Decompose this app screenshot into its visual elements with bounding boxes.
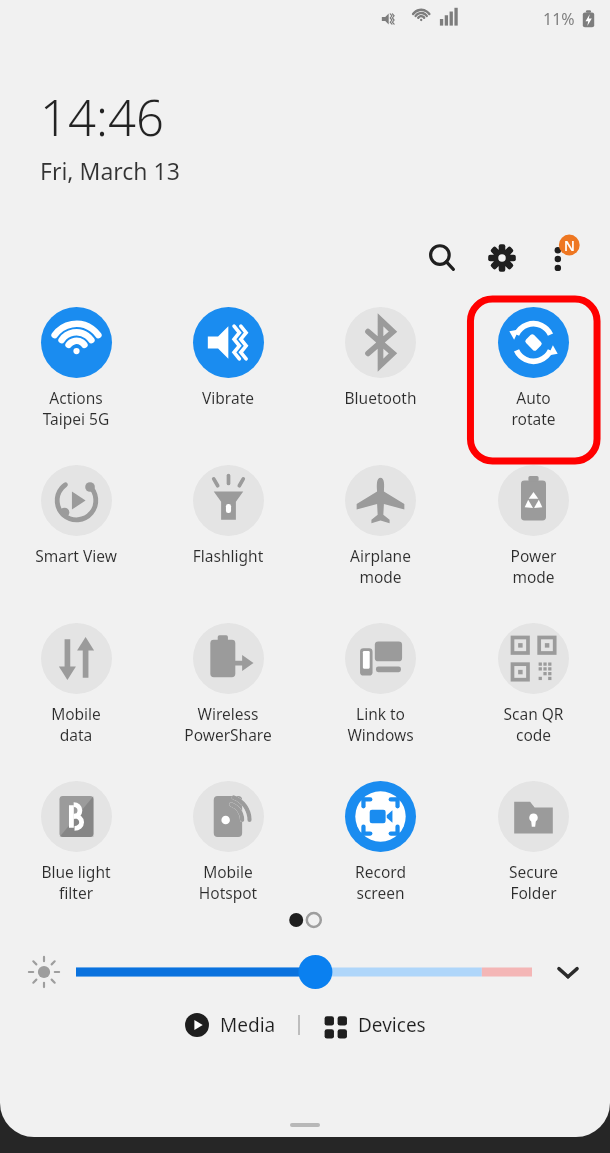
staticText: Link to Windows <box>304 703 457 746</box>
staticText: Record screen <box>304 861 457 904</box>
button[interactable]: Wireless PowerShare <box>152 623 304 746</box>
staticText: Blue light filter <box>0 861 152 904</box>
staticText: Mobile Hotspot <box>152 861 304 904</box>
staticText: Bluetooth <box>304 387 457 408</box>
button[interactable]: Bluetooth <box>304 307 457 408</box>
staticText: Scan QR code <box>457 703 610 746</box>
staticText: Wireless PowerShare <box>152 703 304 746</box>
staticText: N <box>564 236 575 255</box>
button[interactable]: Blue light filter <box>0 781 152 904</box>
button[interactable]: Auto rotate <box>457 307 610 430</box>
button[interactable]: Devices <box>314 1006 434 1044</box>
staticText: Devices <box>358 1012 426 1038</box>
staticText: Power mode <box>457 545 610 588</box>
staticText: Vibrate <box>152 387 304 408</box>
button[interactable]: Flashlight <box>152 465 304 566</box>
button[interactable]: Expand brightness options <box>548 952 588 992</box>
staticText: 14:46 <box>40 84 164 151</box>
button[interactable]: Vibrate <box>152 307 304 408</box>
staticText: Fri, March 13 <box>40 155 180 186</box>
button[interactable]: Smart View <box>0 465 152 566</box>
button[interactable]: Settings <box>476 232 528 284</box>
staticText: Secure Folder <box>457 861 610 904</box>
button[interactable]: Secure Folder <box>457 781 610 904</box>
staticText: Actions Taipei 5G <box>0 387 152 430</box>
button[interactable]: Scan QR code <box>457 623 610 746</box>
button[interactable]: Power mode <box>457 465 610 588</box>
button[interactable]: Mobile data <box>0 623 152 746</box>
button[interactable]: Actions Taipei 5G <box>0 307 152 430</box>
button[interactable]: Brightness <box>76 952 532 992</box>
button[interactable]: Airplane mode <box>304 465 457 588</box>
staticText: Smart View <box>0 545 152 566</box>
button[interactable]: Search <box>416 232 468 284</box>
button[interactable]: Link to Windows <box>304 623 457 746</box>
staticText: Media <box>220 1012 276 1038</box>
staticText: Mobile data <box>0 703 152 746</box>
button[interactable]: Mobile Hotspot <box>152 781 304 904</box>
button[interactable]: Record screen <box>304 781 457 904</box>
button[interactable]: More options <box>536 232 588 284</box>
staticText: Flashlight <box>152 545 304 566</box>
button[interactable]: Media <box>176 1006 284 1044</box>
staticText: Auto rotate <box>457 387 610 430</box>
staticText: Airplane mode <box>304 545 457 588</box>
staticText: 11% <box>543 8 575 30</box>
